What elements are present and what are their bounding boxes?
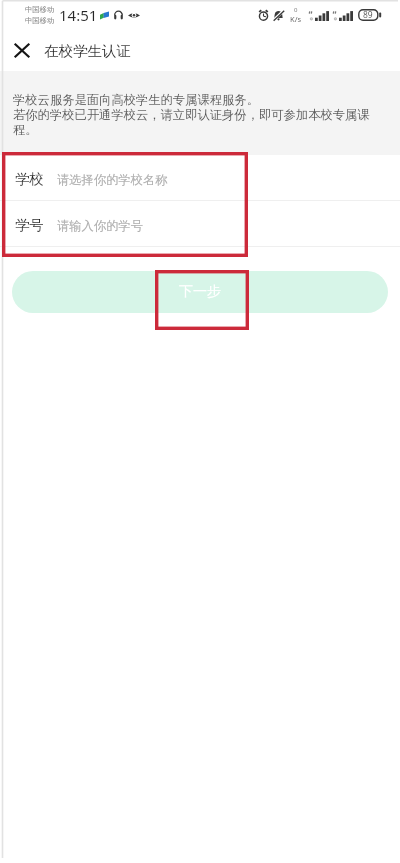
staticText: 在校学生认证: [44, 42, 131, 60]
button[interactable]: 学校: [0, 155, 400, 200]
staticText: 中国移动: [25, 16, 55, 25]
staticText: 中国移动: [25, 5, 55, 14]
staticText: 请选择你的学校名称: [57, 172, 168, 187]
staticText: K/s: [290, 14, 302, 24]
staticText: 89: [363, 9, 373, 21]
staticText: 14:51: [59, 5, 98, 25]
button[interactable]: Close: [0, 30, 44, 71]
staticText: 0: [294, 6, 298, 14]
staticText: 学号: [15, 216, 44, 234]
button[interactable]: 学号: [0, 201, 400, 246]
button[interactable]: 下一步: [12, 271, 388, 313]
staticText: 请输入你的学号: [57, 218, 144, 233]
staticText: 学校云服务是面向高校学生的专属课程服务。 若你的学校已开通学校云，请立即认证身份…: [13, 92, 382, 138]
staticText: 学校: [15, 170, 44, 188]
staticText: 下一步: [179, 283, 221, 301]
